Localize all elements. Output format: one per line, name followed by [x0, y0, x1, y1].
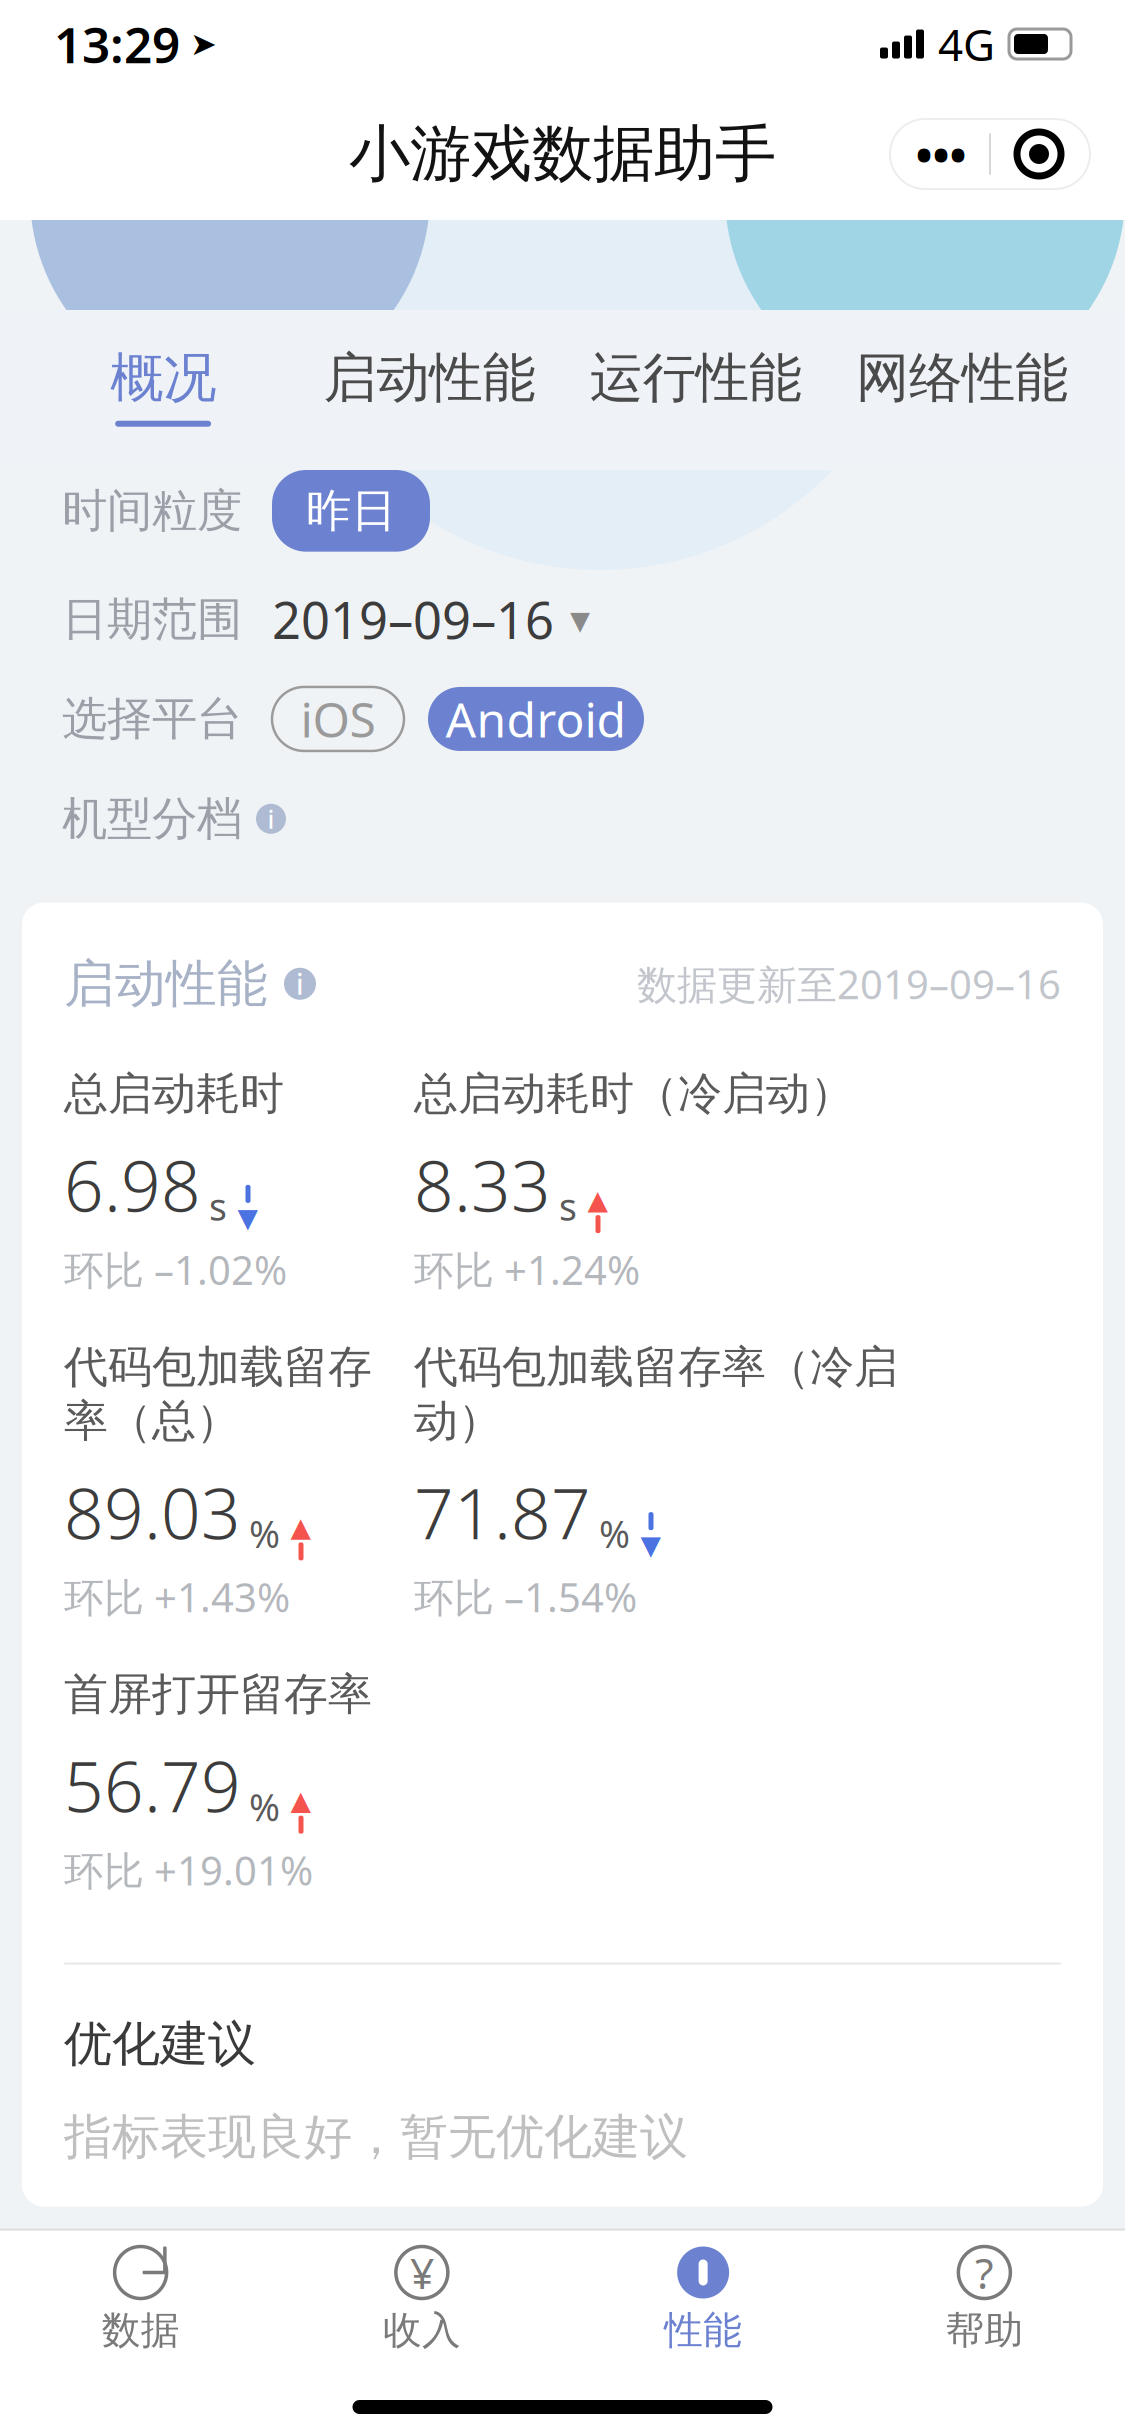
- staticText: 帮助: [945, 2306, 1023, 2354]
- staticText: i: [296, 965, 304, 1002]
- staticText: 2019–09–16: [272, 586, 554, 653]
- button[interactable]: iOS: [272, 687, 404, 751]
- staticText: 环比 +19.01%: [64, 1843, 313, 1897]
- button[interactable]: ?: [844, 2230, 1125, 2364]
- staticText: 概况: [110, 345, 216, 411]
- staticText: 总启动耗时（冷启动）: [414, 1067, 854, 1121]
- staticText: ▼: [237, 1203, 258, 1233]
- button[interactable]: 运行性能: [562, 345, 829, 427]
- button[interactable]: More and close: [890, 119, 1090, 189]
- staticText: 机型分档: [62, 791, 242, 847]
- staticText: 启动性能: [323, 345, 535, 411]
- button[interactable]: 性能: [562, 2230, 844, 2364]
- staticText: 小游戏数据助手: [349, 116, 776, 192]
- staticText: 环比 +1.24%: [414, 1243, 640, 1296]
- staticText: %: [249, 1509, 280, 1558]
- staticText: i: [267, 802, 274, 836]
- staticText: 启动性能: [64, 953, 268, 1015]
- staticText: 收入: [383, 2306, 461, 2354]
- button[interactable]: 2019–09–16: [272, 586, 590, 653]
- staticText: 首屏打开留存率: [64, 1667, 372, 1721]
- staticText: %: [249, 1782, 280, 1831]
- button[interactable]: 网络性能: [829, 345, 1095, 427]
- button[interactable]: 昨日: [272, 470, 430, 552]
- staticText: 71.87: [414, 1466, 591, 1558]
- staticText: ▼: [640, 1530, 661, 1560]
- staticText: ▲: [290, 1512, 311, 1542]
- staticText: s: [559, 1181, 577, 1231]
- button[interactable]: 启动性能: [296, 345, 562, 427]
- staticText: 代码包加载留存率（总）: [64, 1340, 372, 1448]
- staticText: 日期范围: [62, 591, 242, 647]
- staticText: 指标表现良好，暂无优化建议: [64, 2108, 688, 2167]
- staticText: 运行性能: [590, 345, 802, 411]
- staticText: 网络性能: [856, 345, 1068, 411]
- staticText: 时间粒度: [62, 483, 242, 539]
- staticText: 6.98: [64, 1139, 201, 1231]
- staticText: •••: [915, 124, 966, 184]
- staticText: s: [209, 1181, 227, 1231]
- staticText: ¥: [410, 2244, 434, 2301]
- staticText: 昨日: [306, 483, 396, 539]
- staticText: ▲: [290, 1785, 311, 1816]
- staticText: 环比 –1.02%: [64, 1243, 287, 1296]
- staticText: 优化建议: [64, 2015, 256, 2074]
- staticText: 56.79: [64, 1739, 241, 1831]
- staticText: 代码包加载留存率（冷启: [414, 1340, 898, 1394]
- staticText: 89.03: [64, 1466, 241, 1558]
- staticText: 性能: [664, 2306, 742, 2354]
- staticText: 数据: [102, 2306, 180, 2354]
- staticText: 环比 –1.54%: [414, 1570, 637, 1623]
- staticText: 8.33: [414, 1139, 551, 1231]
- staticText: ▾: [570, 597, 590, 642]
- staticText: 环比 +1.43%: [64, 1570, 290, 1623]
- button[interactable]: 数据: [0, 2230, 281, 2364]
- staticText: ➤: [190, 26, 217, 62]
- staticText: 选择平台: [62, 691, 242, 747]
- button[interactable]: Android: [428, 687, 644, 751]
- staticText: 总启动耗时: [64, 1067, 284, 1121]
- staticText: 13:29: [54, 11, 180, 77]
- staticText: ▲: [587, 1185, 608, 1215]
- staticText: iOS: [300, 687, 375, 751]
- staticText: 数据更新至2019–09–16: [637, 957, 1061, 1010]
- button[interactable]: 概况: [30, 345, 296, 427]
- staticText: Android: [445, 687, 626, 751]
- staticText: %: [599, 1509, 630, 1558]
- button[interactable]: ¥: [281, 2230, 562, 2364]
- staticText: ?: [975, 2244, 994, 2301]
- staticText: 4G: [938, 15, 995, 73]
- staticText: 动）: [414, 1394, 502, 1448]
